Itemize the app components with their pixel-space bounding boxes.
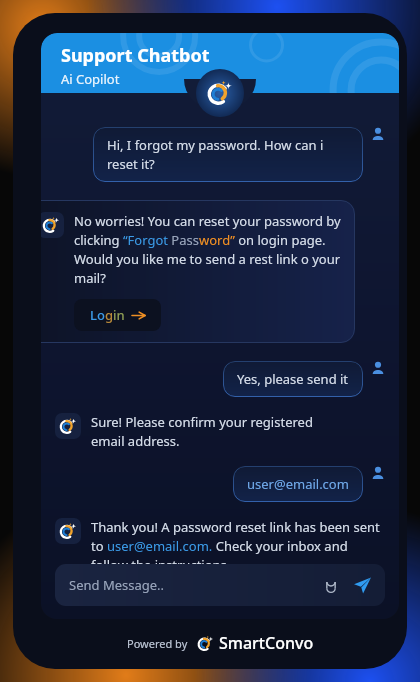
staticText: user@email.com: [247, 475, 349, 493]
button[interactable]: Send: [353, 576, 371, 594]
staticText: Powered by: [127, 636, 188, 651]
staticText: Yes, please send it: [237, 370, 349, 388]
staticText: Login: [90, 306, 125, 324]
button[interactable]: Yes, please send it: [223, 361, 363, 397]
other: User: [371, 127, 385, 141]
staticText: Hi, I forgot my password. How can i rese…: [107, 136, 349, 173]
staticText: Ai Copilot: [61, 70, 120, 88]
button[interactable]: user@email.com: [233, 466, 363, 502]
other: User: [371, 466, 385, 480]
staticText: No worries! You can reset your password …: [74, 212, 342, 287]
staticText: Send Message..: [69, 576, 323, 594]
button[interactable]: Attach file: [323, 577, 339, 593]
other: User: [371, 361, 385, 375]
staticText: Sure! Please confirm your registered ema…: [91, 413, 341, 450]
button[interactable]: Hi, I forgot my password. How can i rese…: [93, 127, 363, 182]
staticText: Thank you! A password reset link has bee…: [91, 518, 385, 564]
button[interactable]: Send Message..: [55, 564, 385, 606]
staticText: Support Chatbot: [61, 43, 210, 68]
button[interactable]: Login: [74, 299, 161, 331]
staticText: SmartConvo: [219, 632, 314, 654]
